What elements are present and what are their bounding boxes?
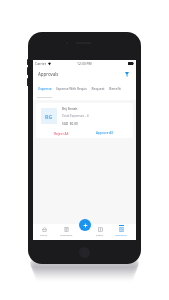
staticText: Submitted xyxy=(60,233,73,236)
button[interactable]: Expense xyxy=(37,81,52,100)
staticText: RG xyxy=(45,113,53,120)
staticText: Drafts xyxy=(96,233,104,236)
button[interactable]: Add xyxy=(79,219,91,231)
staticText: 12:30 PM xyxy=(77,61,92,66)
button[interactable]: Approvals xyxy=(111,225,131,241)
staticText: Home xyxy=(40,233,48,236)
staticText: SGD $0.00 xyxy=(62,122,78,126)
staticText: Approvals xyxy=(38,71,59,77)
button[interactable]: Approve All xyxy=(94,130,115,136)
staticText: Benefit xyxy=(109,86,121,91)
button[interactable]: Drafts xyxy=(90,225,110,241)
button[interactable]: Submitted xyxy=(56,225,76,241)
button[interactable]: Filter xyxy=(122,70,131,79)
staticText: Approvals xyxy=(115,233,127,236)
button[interactable]: Benefit xyxy=(109,81,121,100)
button[interactable]: Expense With Requis xyxy=(56,81,87,100)
staticText: Reject All xyxy=(54,131,69,135)
button[interactable]: Reject All xyxy=(52,130,71,136)
button[interactable]: Home xyxy=(34,225,54,241)
button[interactable]: Request xyxy=(91,81,105,100)
staticText: Approve All xyxy=(96,131,114,135)
button[interactable]: RG xyxy=(36,103,133,138)
staticText: Brij Sinnah xyxy=(62,107,78,111)
staticText: Total Expenses - 4 xyxy=(62,114,89,118)
staticText: Expense xyxy=(38,86,52,91)
staticText: Request xyxy=(91,86,105,91)
staticText: Carrier xyxy=(35,61,47,66)
staticText: Expense With Requis xyxy=(56,87,87,91)
